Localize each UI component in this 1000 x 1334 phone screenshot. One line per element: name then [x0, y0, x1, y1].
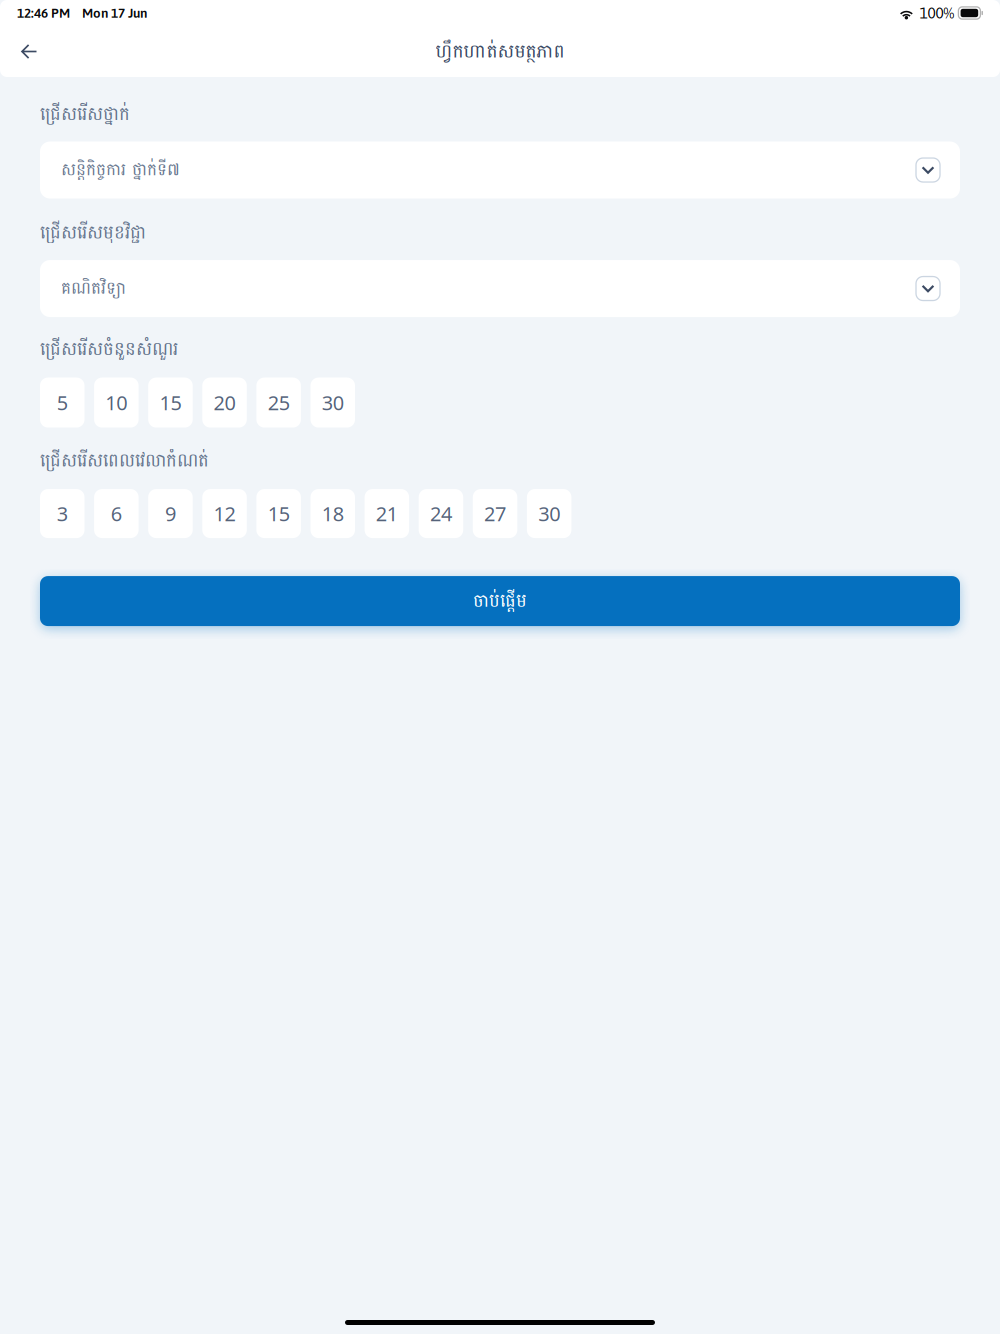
staticText: 12:46 PM: [17, 5, 70, 21]
staticText: ចាប់ផ្ដើម: [473, 585, 527, 617]
button[interactable]: 30: [527, 489, 571, 538]
button[interactable]: 30: [310, 378, 355, 428]
staticText: ជ្រើសរើសពេលវេលាកំណត់: [40, 445, 209, 477]
button[interactable]: 20: [202, 378, 247, 428]
button[interactable]: 10: [94, 378, 139, 428]
staticText: 24: [430, 500, 452, 527]
button[interactable]: Select class: [40, 141, 960, 198]
staticText: 3: [57, 500, 68, 527]
button[interactable]: 3: [40, 489, 84, 538]
button[interactable]: 5: [40, 378, 84, 428]
button[interactable]: 15: [256, 489, 301, 538]
button[interactable]: ចាប់ផ្ដើម: [40, 576, 960, 626]
staticText: 9: [165, 500, 176, 527]
staticText: 15: [159, 389, 181, 416]
button[interactable]: Select subject: [40, 260, 960, 317]
staticText: 30: [538, 500, 560, 527]
button[interactable]: 25: [256, 378, 301, 428]
staticText: 25: [268, 389, 290, 416]
staticText: 100%: [919, 4, 954, 22]
staticText: 6: [111, 500, 122, 527]
staticText: 18: [322, 500, 344, 527]
staticText: Mon 17 Jun: [82, 5, 147, 21]
staticText: ជ្រើសរើសមុខវិជ្ជា: [40, 216, 146, 249]
staticText: ជ្រើសរើសថ្នាក់: [40, 98, 130, 130]
staticText: 15: [268, 500, 290, 527]
staticText: ជ្រើសរើសចំនួនសំណួរ: [40, 333, 178, 365]
button[interactable]: Back: [8, 30, 50, 72]
staticText: 10: [105, 389, 127, 416]
staticText: 21: [376, 500, 398, 527]
button[interactable]: 24: [419, 489, 463, 538]
staticText: 20: [214, 389, 236, 416]
staticText: គណិតវិទ្យា: [61, 273, 126, 304]
button[interactable]: 6: [94, 489, 139, 538]
staticText: 30: [322, 389, 344, 416]
button[interactable]: 18: [310, 489, 355, 538]
button[interactable]: 12: [202, 489, 247, 538]
staticText: 5: [57, 389, 68, 416]
button[interactable]: 21: [365, 489, 409, 538]
button[interactable]: 15: [148, 378, 193, 428]
staticText: 12: [214, 500, 236, 527]
staticText: សន្តិកិច្ចការ ថ្នាក់ទី៧: [61, 155, 180, 185]
staticText: ហ្វឹកហាត់សមត្ថភាព: [435, 35, 564, 68]
button[interactable]: 27: [473, 489, 517, 538]
button[interactable]: 9: [148, 489, 193, 538]
staticText: 27: [484, 500, 506, 527]
